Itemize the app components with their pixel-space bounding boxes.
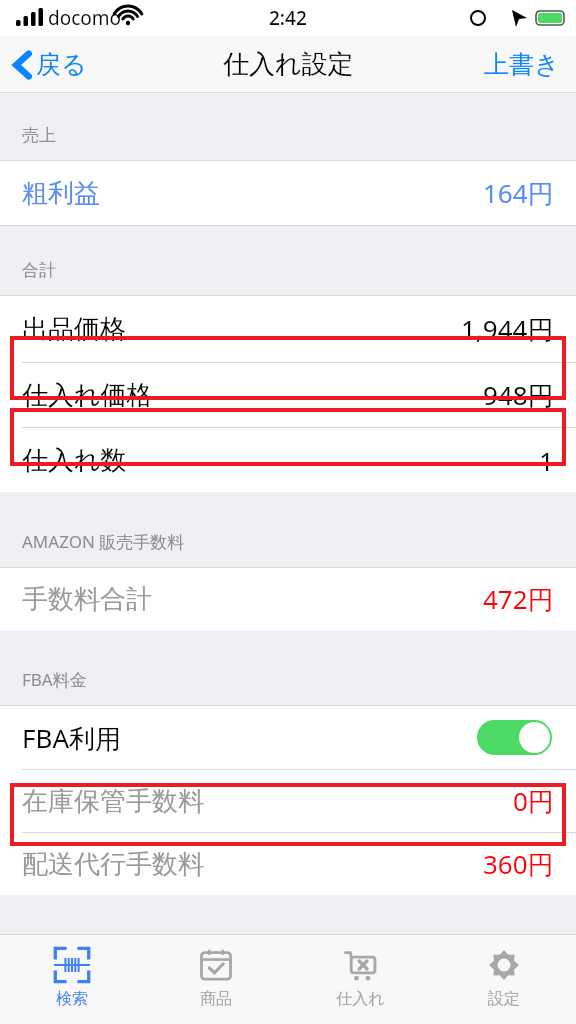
button[interactable]: 配送代行手数料	[0, 833, 576, 895]
staticText: 仕入れ価格	[22, 379, 153, 412]
staticText: 粗利益	[22, 177, 100, 210]
button[interactable]: 仕入れ	[288, 935, 432, 1024]
other: FBA利用切り替え	[477, 720, 552, 755]
button[interactable]: 商品	[144, 935, 288, 1024]
staticText: 164円	[483, 175, 554, 211]
staticText: 売上	[22, 125, 56, 146]
staticText: 手数料合計	[22, 583, 152, 616]
staticText: FBA料金	[22, 668, 87, 691]
button[interactable]: 戻る	[0, 43, 101, 86]
button[interactable]: 仕入れ価格	[0, 363, 576, 427]
button[interactable]: 上書き	[468, 49, 576, 80]
staticText: 検索	[56, 989, 88, 1009]
staticText: 2:42	[269, 5, 307, 31]
button[interactable]: FBA利用	[0, 706, 576, 769]
staticText: 上書き	[484, 49, 560, 80]
staticText: 1	[539, 443, 554, 478]
staticText: 仕入れ設定	[223, 48, 354, 81]
staticText: 合計	[22, 260, 56, 281]
button[interactable]: 検索	[0, 935, 144, 1024]
staticText: AMAZON 販売手数料	[22, 530, 185, 553]
staticText: 1,944円	[461, 311, 554, 347]
staticText: 在庫保管手数料	[22, 785, 204, 818]
staticText: 商品	[200, 989, 232, 1009]
staticText: 配送代行手数料	[22, 848, 204, 881]
staticText: 出品価格	[22, 313, 126, 346]
staticText: 仕入れ	[336, 989, 385, 1009]
button[interactable]: 粗利益	[0, 161, 576, 225]
staticText: docomo	[48, 5, 122, 31]
staticText: FBA利用	[22, 720, 122, 756]
button[interactable]: 仕入れ数	[0, 428, 576, 492]
staticText: 仕入れ数	[22, 444, 127, 477]
button[interactable]: 在庫保管手数料	[0, 770, 576, 832]
staticText: 948円	[483, 377, 554, 413]
button[interactable]: 設定	[432, 935, 576, 1024]
button[interactable]: 出品価格	[0, 296, 576, 362]
button[interactable]: 手数料合計	[0, 568, 576, 630]
staticText: 0円	[513, 783, 554, 819]
staticText: 戻る	[36, 49, 87, 80]
staticText: 設定	[488, 989, 520, 1009]
staticText: 472円	[483, 581, 554, 617]
staticText: 360円	[483, 846, 554, 882]
